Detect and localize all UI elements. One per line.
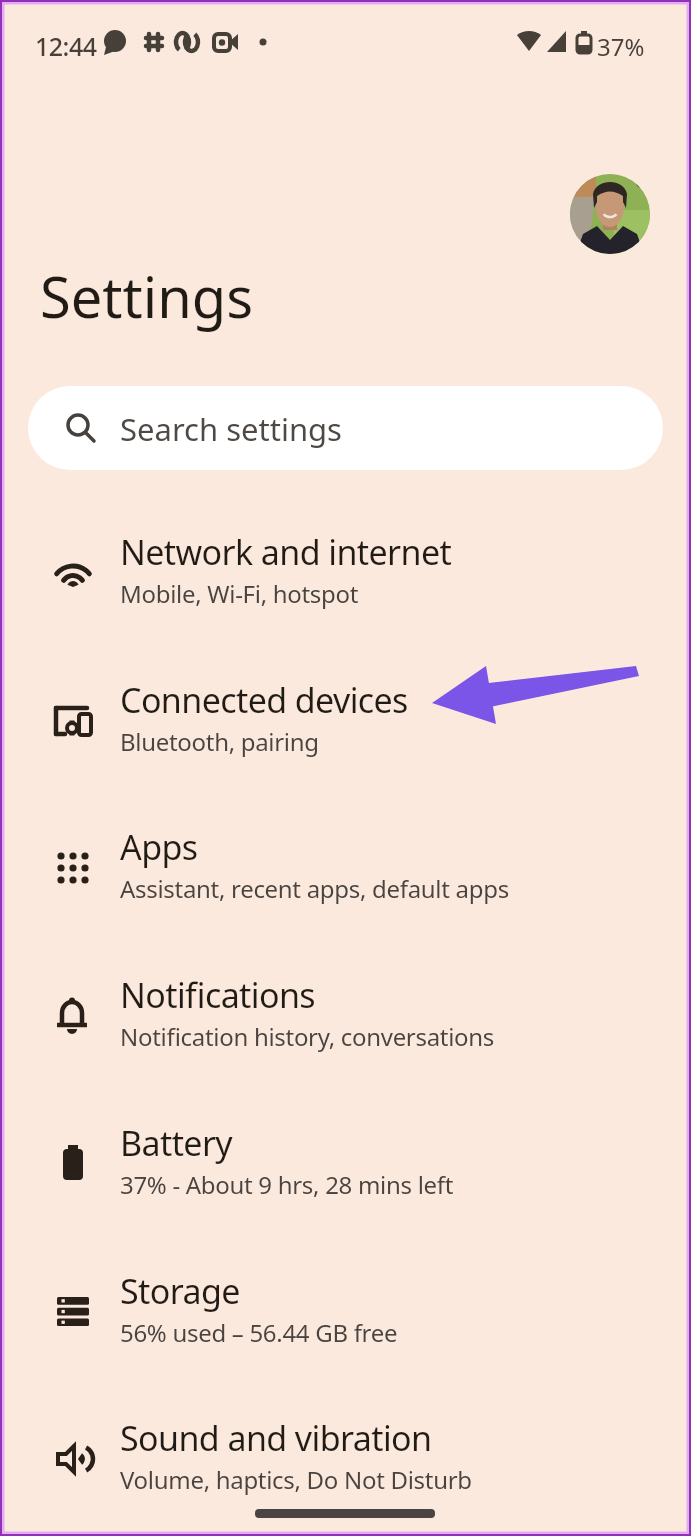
staticText: 56% used – 56.44 GB free — [120, 1316, 398, 1349]
staticText: Volume, haptics, Do Not Disturb — [120, 1463, 472, 1496]
staticText: Network and internet — [120, 529, 452, 575]
staticText: 37% - About 9 hrs, 28 mins left — [120, 1168, 454, 1201]
staticText: Bluetooth, pairing — [120, 725, 319, 758]
staticText: Sound and vibration — [120, 1415, 432, 1461]
button[interactable]: Notifications — [0, 954, 691, 1074]
staticText: Settings — [40, 258, 254, 334]
staticText: Mobile, Wi-Fi, hotspot — [120, 577, 359, 610]
staticText: Notifications — [120, 972, 316, 1018]
staticText: 37% — [597, 30, 645, 63]
staticText: Connected devices — [120, 677, 408, 723]
staticText: 12:44 — [35, 29, 97, 63]
staticText: Search settings — [120, 408, 342, 450]
staticText: Notification history, conversations — [120, 1020, 495, 1053]
staticText: Battery — [120, 1120, 233, 1166]
staticText: Storage — [120, 1268, 240, 1314]
button[interactable]: Connected devices — [0, 659, 691, 779]
button[interactable]: Apps — [0, 806, 691, 926]
staticText: Assistant, recent apps, default apps — [120, 872, 509, 905]
button[interactable]: Sound and vibration — [0, 1397, 691, 1517]
button[interactable]: Search settings — [28, 386, 663, 470]
button[interactable]: Battery — [0, 1102, 691, 1222]
button[interactable]: Storage — [0, 1250, 691, 1370]
staticText: Apps — [120, 824, 198, 870]
button[interactable]: Network and internet — [0, 511, 691, 631]
